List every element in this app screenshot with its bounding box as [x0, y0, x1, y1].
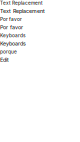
staticText: Text Replacement: [0, 8, 45, 14]
staticText: Keyboards: [0, 32, 26, 38]
staticText: Keyboards: [0, 40, 26, 47]
staticText: Edit: [0, 57, 9, 63]
staticText: Text Replacement: [0, 0, 43, 6]
staticText: Por favor: [0, 16, 22, 22]
staticText: Por favor: [0, 24, 23, 31]
staticText: porque: [0, 49, 17, 55]
